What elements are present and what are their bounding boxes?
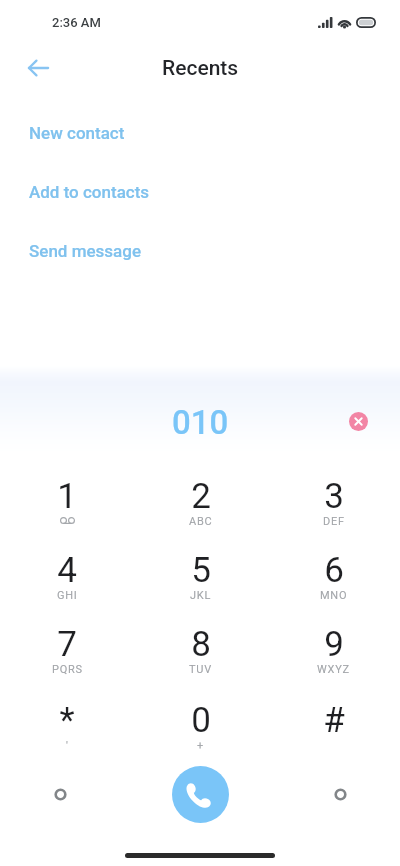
staticText: 1 — [57, 476, 77, 517]
button[interactable]: New contact — [0, 103, 400, 162]
staticText: JKL — [190, 589, 212, 602]
button[interactable]: 0 — [134, 689, 267, 765]
staticText: 5 — [191, 550, 211, 591]
button[interactable]: 8 — [134, 615, 267, 689]
button[interactable]: Call — [140, 762, 260, 827]
button[interactable]: Add to contacts — [0, 162, 400, 221]
staticText: * — [59, 700, 75, 741]
button[interactable]: # — [267, 689, 400, 765]
staticText: ' — [66, 739, 69, 752]
button[interactable]: 2 — [134, 467, 267, 541]
staticText: PQRS — [52, 663, 83, 676]
button[interactable]: 7 — [0, 615, 134, 689]
staticText: 2:36 AM — [52, 15, 101, 30]
staticText: New contact — [29, 123, 125, 143]
staticText: # — [323, 700, 345, 741]
staticText: 010 — [172, 403, 229, 442]
staticText: 8 — [191, 624, 211, 665]
button[interactable]: Keypad options — [280, 762, 400, 827]
button[interactable]: 4 — [0, 541, 134, 615]
staticText: GHI — [57, 589, 78, 602]
button[interactable]: Send message — [0, 221, 400, 280]
staticText: WXYZ — [317, 663, 350, 676]
staticText: TUV — [189, 663, 212, 676]
staticText: Recents — [162, 56, 239, 81]
button[interactable]: More options — [0, 762, 120, 827]
staticText: 0 — [191, 700, 211, 741]
staticText: 6 — [324, 550, 344, 591]
button[interactable]: 1 — [0, 467, 134, 541]
button[interactable]: 3 — [267, 467, 400, 541]
staticText: MNO — [320, 589, 348, 602]
staticText: Add to contacts — [29, 182, 150, 202]
button[interactable]: * — [0, 689, 134, 765]
staticText: + — [197, 739, 204, 752]
button[interactable]: 6 — [267, 541, 400, 615]
staticText: Send message — [29, 241, 141, 261]
staticText: ABC — [189, 515, 213, 528]
staticText: 2 — [191, 476, 211, 517]
button[interactable]: Delete — [340, 403, 376, 439]
staticText: DEF — [323, 515, 345, 528]
button[interactable]: 9 — [267, 615, 400, 689]
staticText: 7 — [57, 624, 77, 665]
button[interactable]: 5 — [134, 541, 267, 615]
button[interactable]: Back — [16, 46, 60, 90]
staticText: 9 — [324, 624, 344, 665]
staticText: 3 — [324, 476, 344, 517]
staticText: 4 — [57, 550, 77, 591]
